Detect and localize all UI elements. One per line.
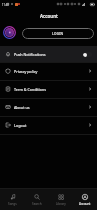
button[interactable]: About us — [0, 98, 97, 116]
staticText: Library — [56, 202, 66, 206]
staticText: Term & Conditions — [14, 87, 47, 92]
button[interactable]: Search — [25, 189, 49, 210]
staticText: 11:40 — [2, 3, 9, 7]
staticText: Songs — [8, 202, 17, 206]
button[interactable]: Privacy policy — [0, 62, 97, 80]
button[interactable]: Library — [49, 189, 73, 210]
other: Open About us — [88, 105, 92, 109]
button[interactable]: Toggle push notifications — [83, 52, 92, 57]
staticText: Search — [32, 202, 42, 206]
button[interactable]: Account — [73, 189, 97, 210]
other: Open Term & Conditions — [88, 87, 92, 91]
staticText: Privacy policy — [14, 69, 38, 74]
staticText: Account — [79, 202, 91, 206]
staticText: Logout — [14, 123, 27, 128]
other: Open Privacy policy — [88, 69, 92, 73]
staticText: Account — [40, 13, 58, 19]
staticText: Push Notifications — [14, 52, 46, 57]
other: Open Logout — [88, 123, 92, 127]
staticText: LOGIN — [52, 32, 64, 36]
staticText: About us — [14, 105, 30, 110]
button[interactable]: Push Notifications — [0, 46, 97, 62]
button[interactable]: Songs — [0, 189, 25, 210]
button[interactable]: LOGIN — [22, 28, 94, 39]
button[interactable]: Term & Conditions — [0, 80, 97, 98]
other: App logo — [3, 26, 16, 39]
button[interactable]: Logout — [0, 116, 97, 134]
